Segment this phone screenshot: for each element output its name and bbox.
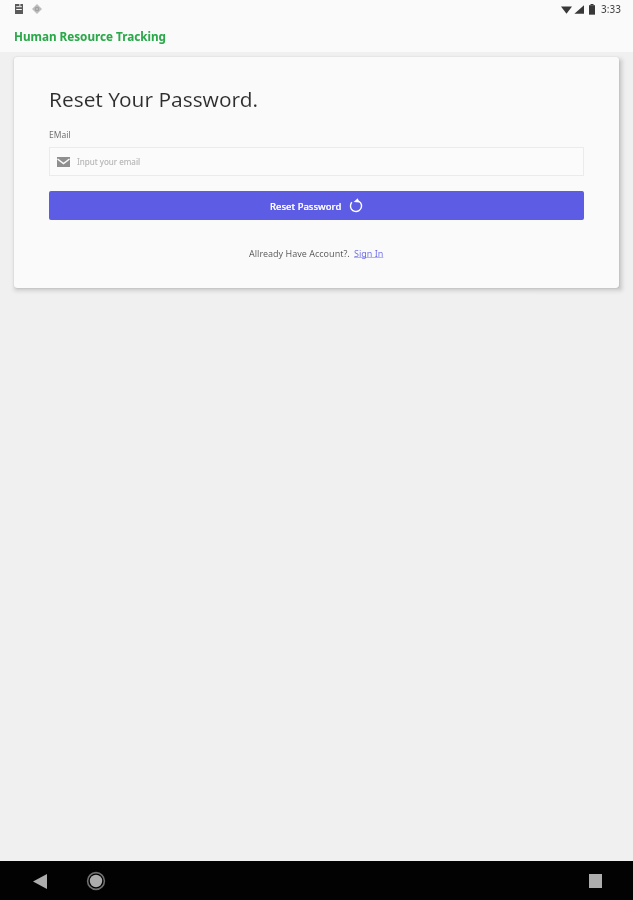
- button[interactable]: Home: [80, 865, 112, 897]
- staticText: Input your email: [77, 156, 141, 167]
- staticText: EMail: [49, 129, 71, 141]
- staticText: Allready Have Account?.: [249, 247, 350, 259]
- staticText: Sign In: [354, 247, 384, 259]
- staticText: Reset Your Password.: [49, 85, 259, 113]
- staticText: Reset Password: [270, 200, 342, 213]
- button[interactable]: Reset Password: [49, 191, 584, 220]
- staticText: Human Resource Tracking: [14, 28, 166, 44]
- button[interactable]: Sign In: [354, 247, 384, 259]
- button[interactable]: Recent apps: [579, 865, 611, 897]
- button[interactable]: Input your email: [49, 147, 584, 176]
- button[interactable]: Back: [24, 865, 56, 897]
- staticText: 3:33: [601, 2, 621, 16]
